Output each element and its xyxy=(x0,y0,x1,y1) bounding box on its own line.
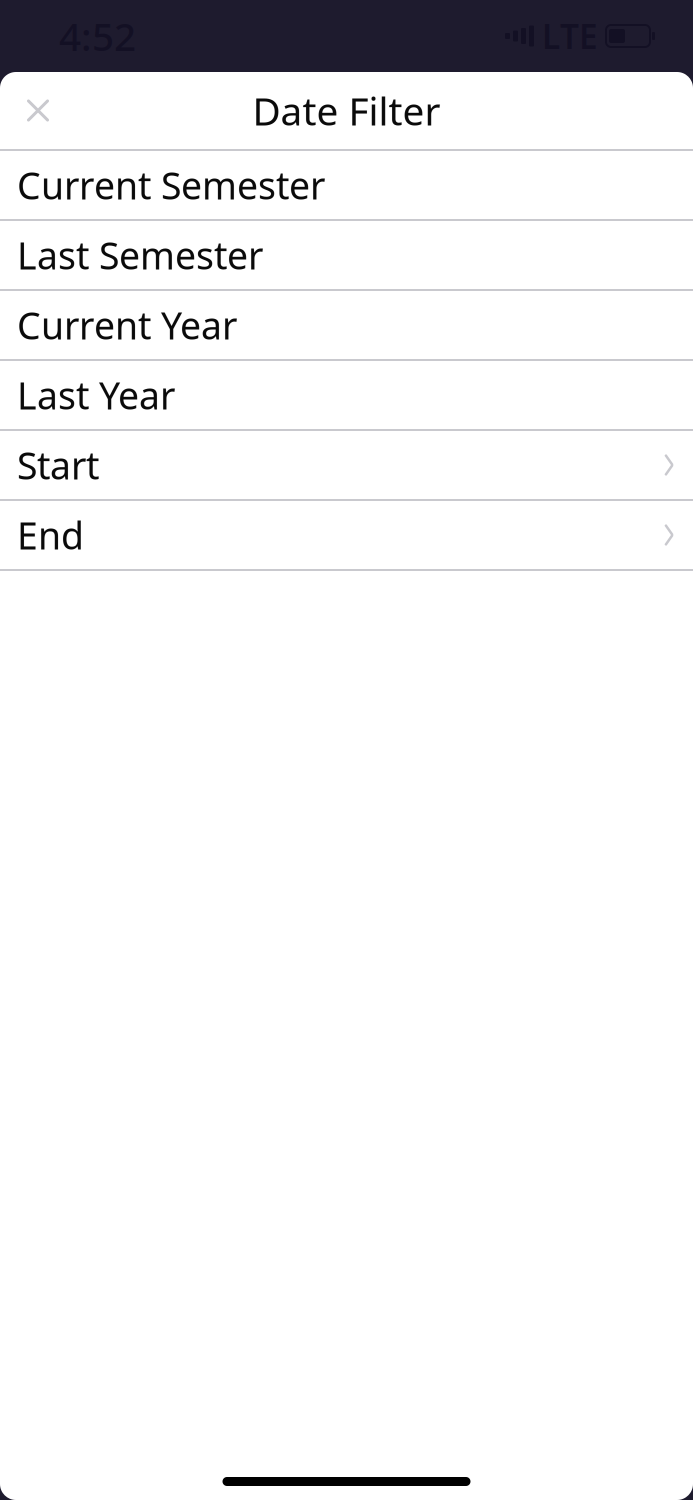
staticText: Start xyxy=(17,440,99,490)
staticText: Current Semester xyxy=(17,160,325,210)
button[interactable]: Last Semester xyxy=(0,221,693,289)
button[interactable]: Start xyxy=(0,431,693,499)
staticText: Last Year xyxy=(17,370,175,420)
staticText: Date Filter xyxy=(252,85,440,136)
staticText: 4:52 xyxy=(59,10,136,62)
staticText: LTE xyxy=(542,14,598,58)
staticText: End xyxy=(17,510,84,560)
button[interactable]: Current Year xyxy=(0,291,693,359)
button[interactable]: Close xyxy=(0,72,76,148)
button[interactable]: End xyxy=(0,501,693,569)
staticText: Current Year xyxy=(17,300,237,350)
button[interactable]: Last Year xyxy=(0,361,693,429)
button[interactable]: Current Semester xyxy=(0,151,693,219)
staticText: Last Semester xyxy=(17,230,263,280)
